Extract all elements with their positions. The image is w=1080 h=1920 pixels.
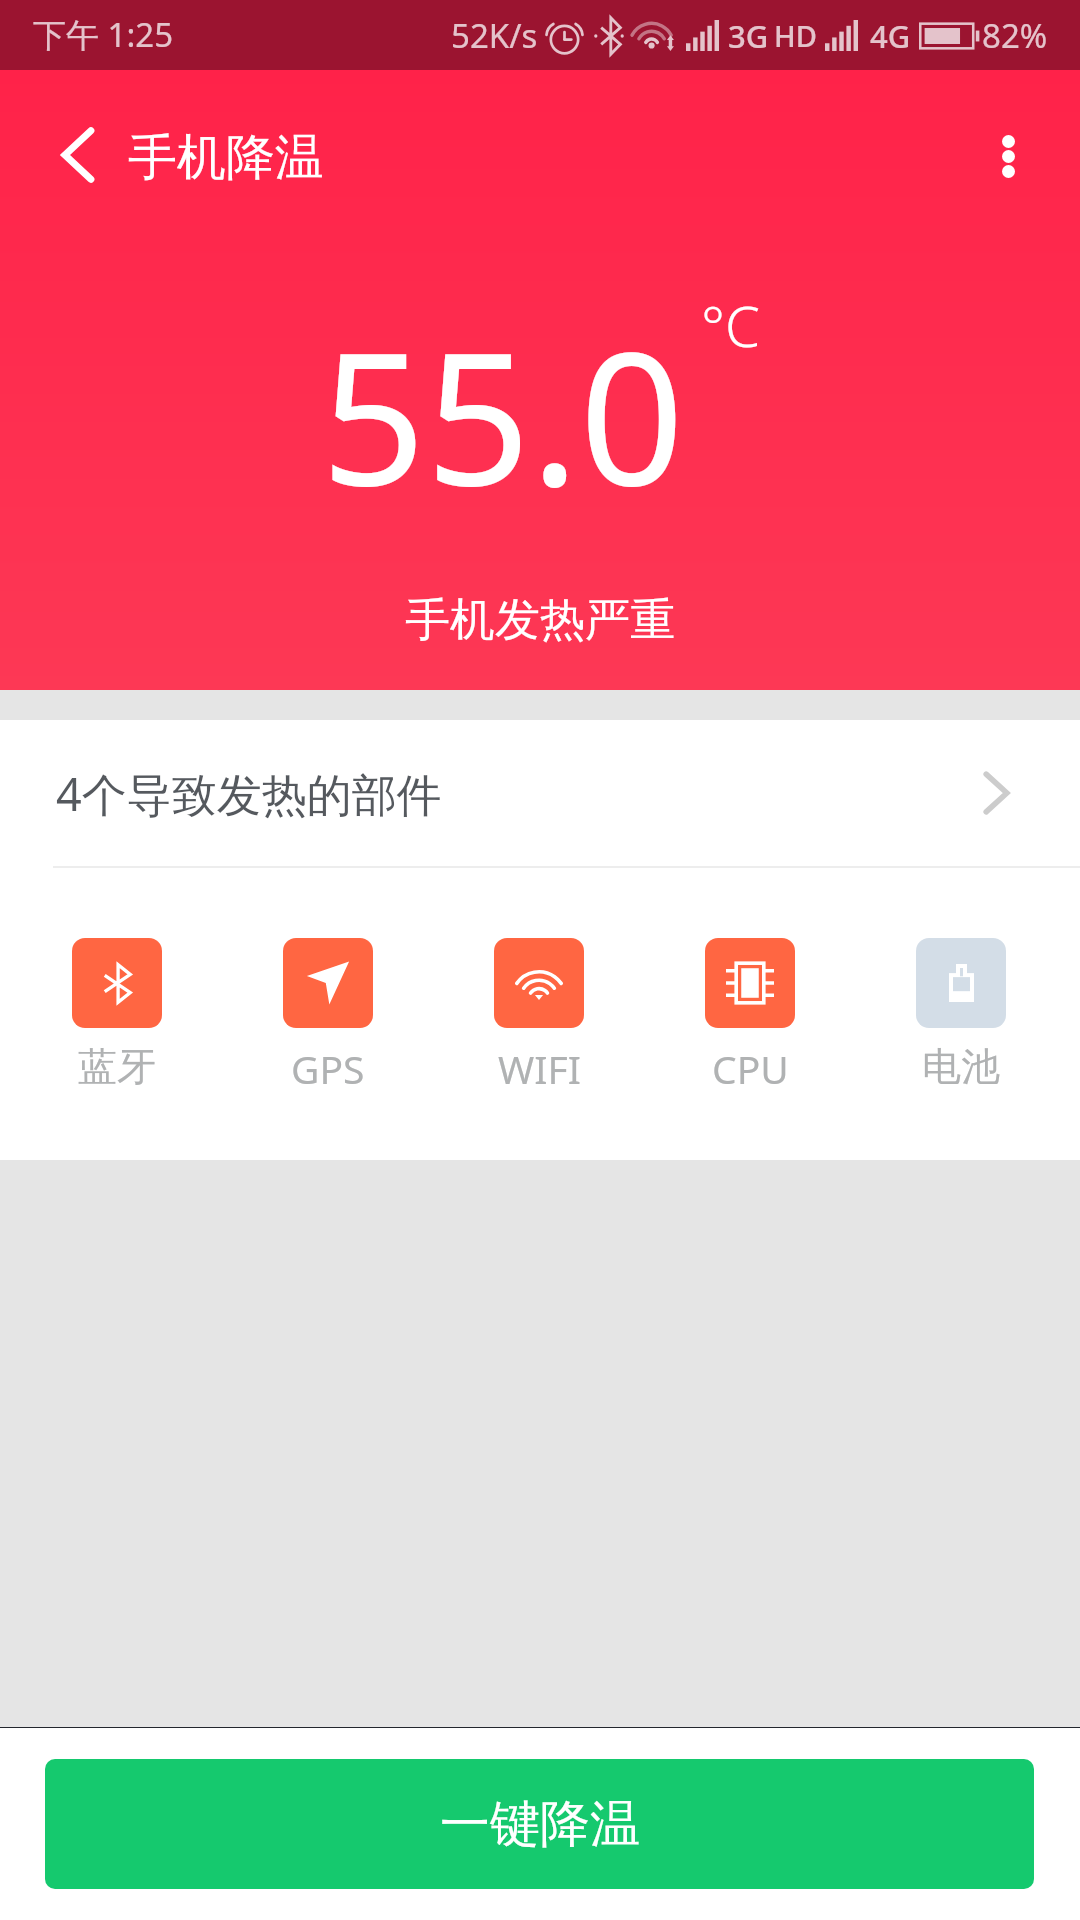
staticText: CPU bbox=[712, 1042, 789, 1095]
staticText: 手机降温 bbox=[128, 127, 324, 189]
staticText: 蓝牙 bbox=[78, 1042, 156, 1091]
staticText: WIFI bbox=[498, 1042, 581, 1095]
button[interactable]: More options bbox=[952, 70, 1080, 228]
staticText: 一键降温 bbox=[440, 1793, 640, 1856]
button[interactable]: GPS bbox=[283, 938, 373, 1095]
staticText: 电池 bbox=[922, 1042, 1000, 1091]
button[interactable]: CPU bbox=[705, 938, 795, 1095]
button[interactable]: 一键降温 bbox=[45, 1759, 1034, 1889]
button[interactable]: 蓝牙 bbox=[72, 938, 162, 1091]
staticText: 55.0 bbox=[321, 289, 685, 538]
button[interactable]: 电池 bbox=[916, 938, 1006, 1091]
button[interactable]: Back bbox=[0, 70, 128, 228]
staticText: 4个导致发热的部件 bbox=[56, 763, 442, 824]
staticText: 52K/s bbox=[451, 13, 538, 58]
staticText: 3G bbox=[728, 15, 769, 57]
staticText: 4G bbox=[870, 15, 911, 57]
staticText: 手机发热严重 bbox=[405, 592, 675, 649]
button[interactable]: 4个导致发热的部件 bbox=[0, 720, 1080, 866]
staticText: GPS bbox=[291, 1042, 365, 1095]
staticText: °C bbox=[701, 287, 760, 363]
staticText: 下午 1:25 bbox=[33, 12, 174, 57]
staticText: HD bbox=[774, 16, 817, 55]
button[interactable]: WIFI bbox=[494, 938, 584, 1095]
staticText: 82% bbox=[982, 13, 1048, 58]
